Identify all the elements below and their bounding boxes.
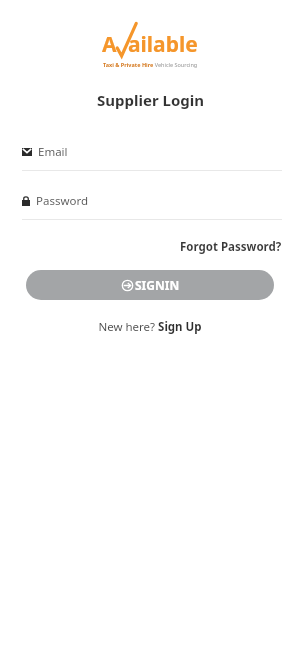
button[interactable]: New here? Sign Up — [94, 316, 206, 338]
staticText: Forgot Password? — [180, 239, 282, 255]
staticText: ailable — [128, 30, 198, 59]
other: Email — [22, 148, 32, 156]
other: Password — [22, 196, 30, 206]
staticText: Taxi & Private Hire Vehicle Sourcing — [103, 61, 198, 68]
other: Sign in — [121, 279, 134, 292]
staticText: SIGNIN — [135, 277, 180, 293]
button[interactable]: Password — [0, 193, 300, 220]
staticText: A — [102, 30, 117, 59]
button[interactable]: Sign in — [26, 270, 274, 300]
staticText: Supplier Login — [97, 90, 204, 110]
staticText: Password — [36, 193, 89, 209]
button[interactable]: Email — [0, 144, 300, 171]
staticText: New here? Sign Up — [98, 319, 202, 335]
button[interactable]: Forgot Password? — [178, 236, 284, 258]
staticText: Email — [38, 144, 68, 160]
